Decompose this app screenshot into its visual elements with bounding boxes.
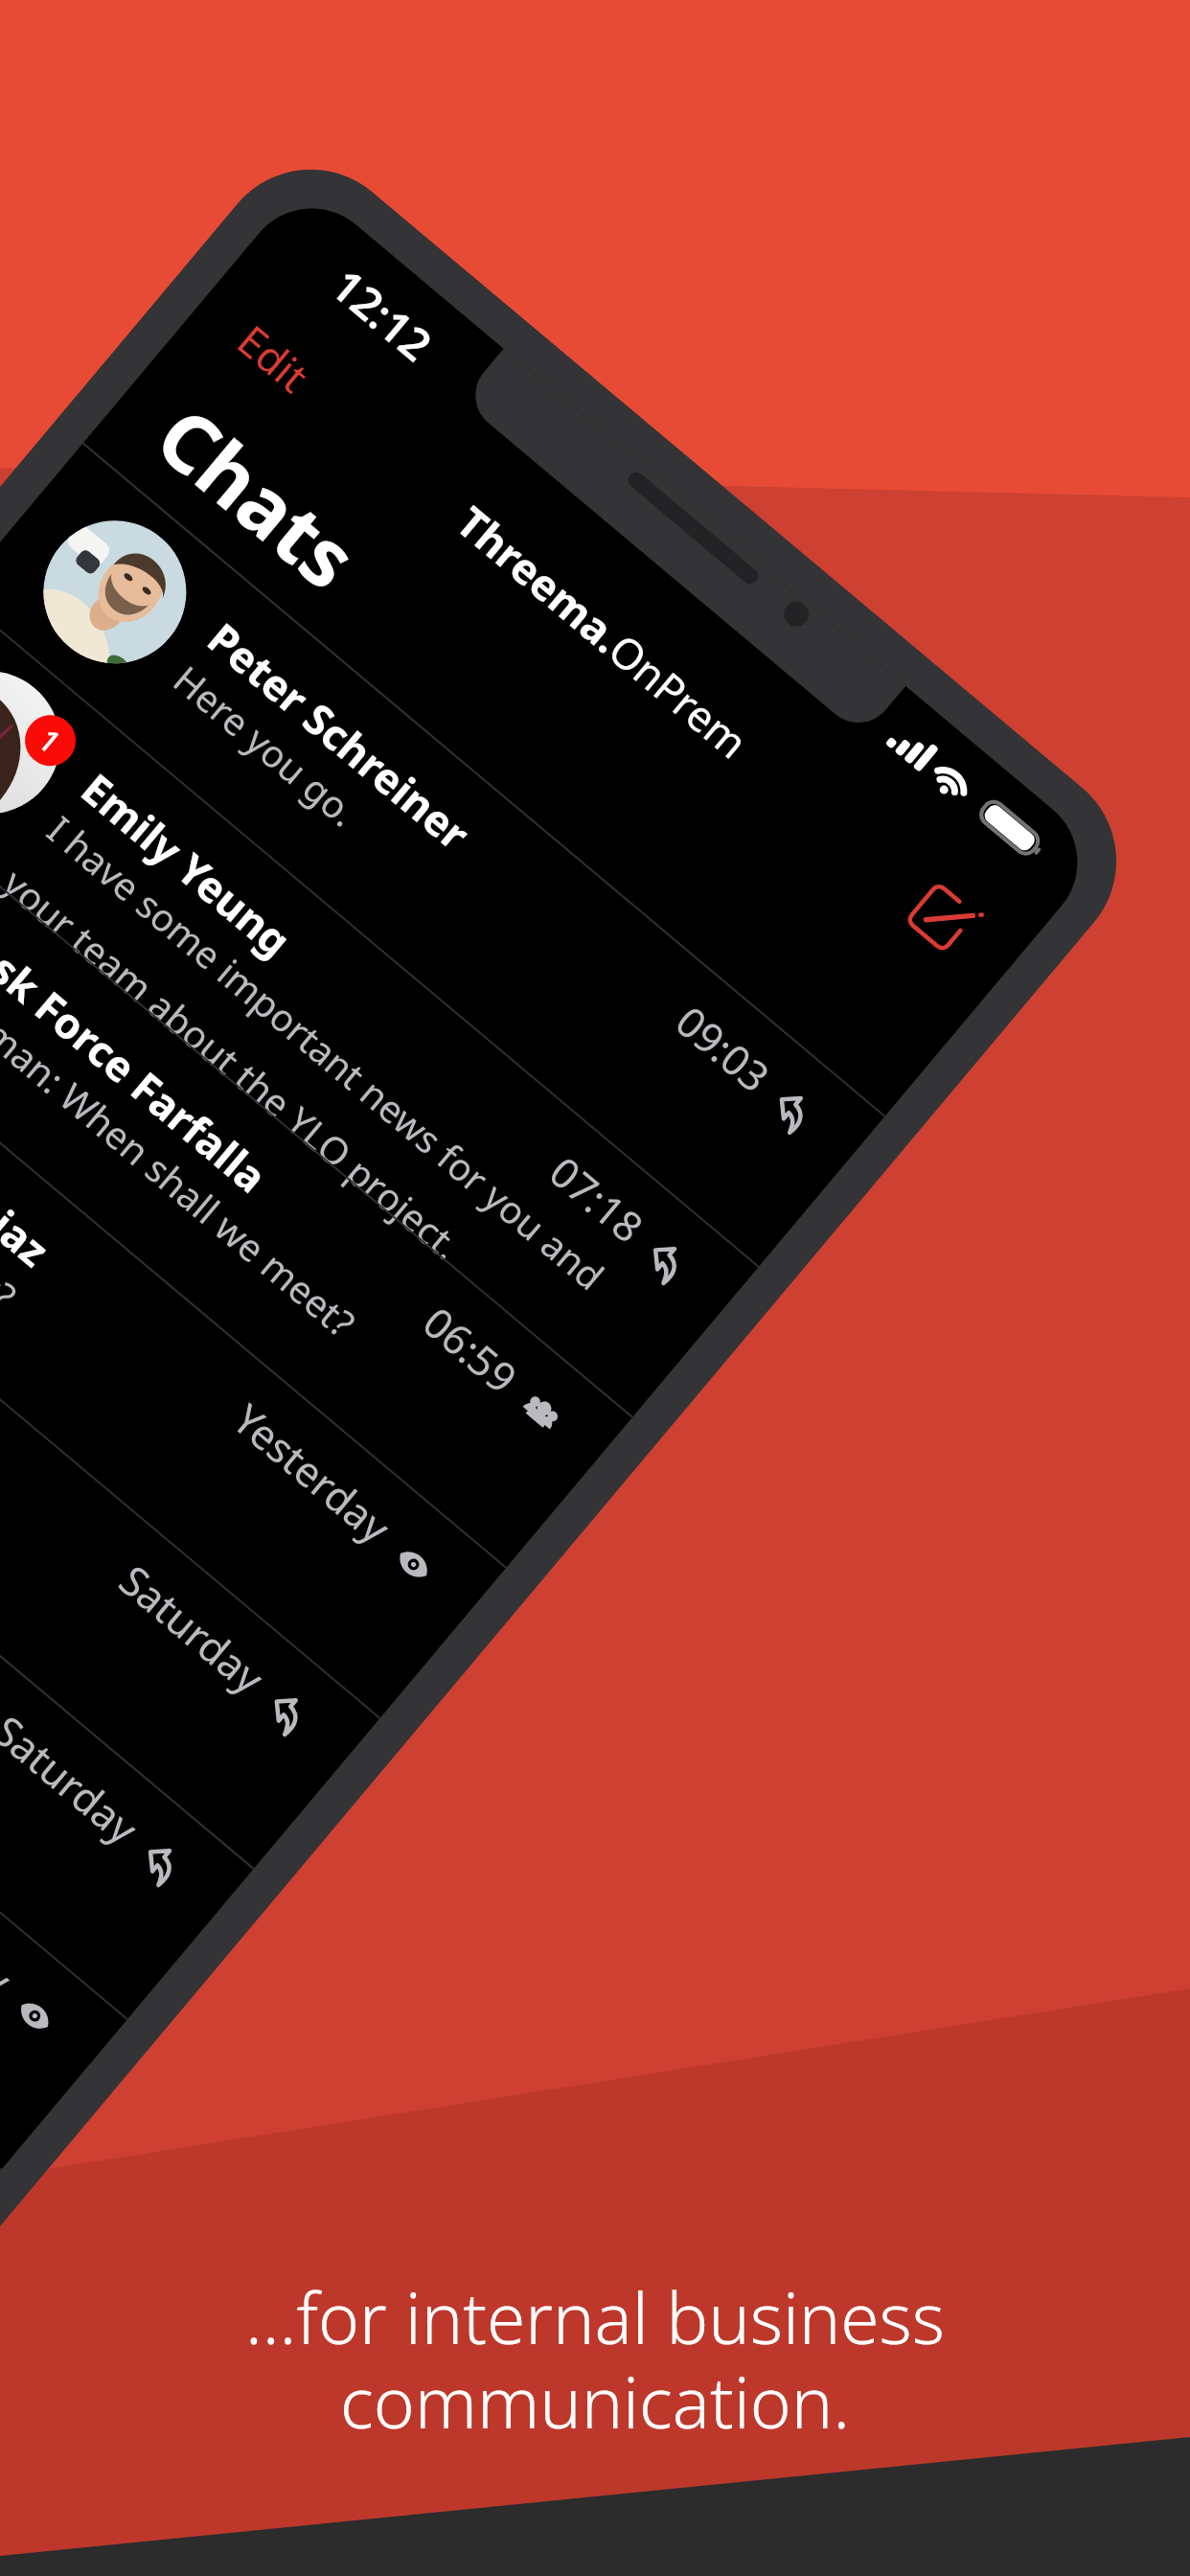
staticText: Yesterday	[222, 1391, 403, 1556]
staticText: …for internal business communication.	[245, 2269, 945, 2449]
button[interactable]: Sara Lopez	[0, 1496, 2, 2320]
button[interactable]: Roberto Diaz	[0, 894, 507, 1718]
staticText: I have some important news for you and y…	[0, 804, 629, 1365]
staticText: 09:03	[664, 993, 782, 1104]
staticText: 12:12	[319, 255, 445, 374]
staticText: Threema.	[445, 493, 634, 665]
staticText: Emily Yeung	[70, 760, 303, 968]
staticText: Friday	[0, 1887, 24, 2007]
staticText: Task Force Farfalla	[0, 911, 280, 1205]
button[interactable]: Lena Marti	[0, 1044, 381, 1868]
staticText: Peter Schreiner	[196, 609, 482, 862]
staticText: OnPrem	[597, 621, 760, 771]
staticText: Edit	[226, 312, 321, 404]
staticText: Saturday	[108, 1552, 277, 1706]
staticText: Chats	[136, 381, 381, 612]
button[interactable]: New chat	[900, 876, 984, 959]
button[interactable]: Product Team	[0, 1345, 128, 2169]
button[interactable]: Edit	[219, 305, 328, 411]
button[interactable]: Task Force Farfalla	[0, 743, 633, 1567]
staticText: Goldman: When shall we meet?	[0, 955, 366, 1348]
staticText: Roberto Diaz	[0, 1061, 62, 1279]
button[interactable]: Jonas Weber	[0, 1195, 254, 2019]
staticText: Saturday	[0, 1702, 150, 1857]
staticText: 06:59	[412, 1294, 529, 1405]
button[interactable]: 1	[0, 593, 759, 1417]
staticText: 1	[30, 719, 71, 763]
staticText: Here you go.	[164, 654, 369, 837]
staticText: 07:18	[538, 1144, 655, 1255]
button[interactable]: Peter Schreiner	[0, 442, 886, 1266]
staticText: About 5pm, ok?	[0, 1105, 28, 1320]
